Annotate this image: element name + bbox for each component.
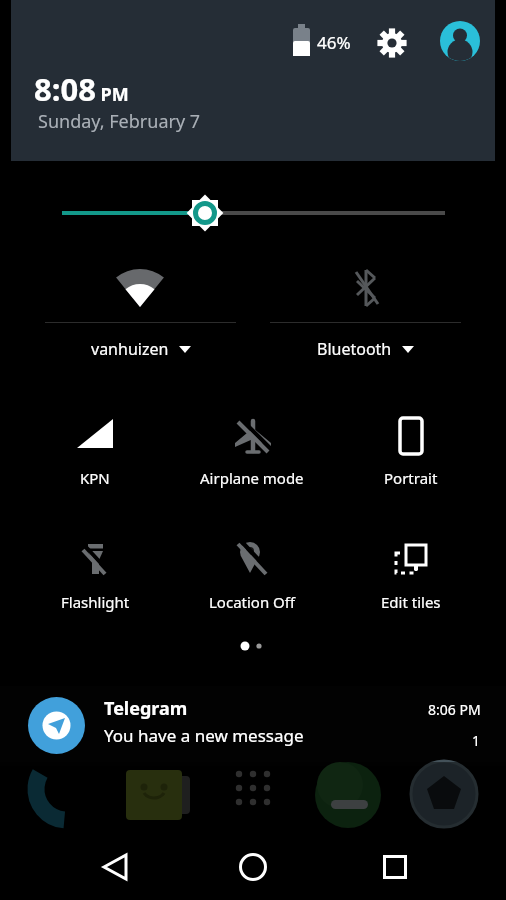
button[interactable]: Edit tiles bbox=[336, 524, 486, 624]
button[interactable]: Location Off bbox=[177, 524, 327, 624]
staticText: Sunday, February 7 bbox=[38, 109, 201, 134]
staticText: Flashlight bbox=[61, 592, 130, 612]
button[interactable]: vanhuizen bbox=[45, 248, 236, 373]
staticText: 8:08 PM bbox=[34, 68, 129, 110]
button[interactable] bbox=[40, 190, 466, 236]
staticText: Bluetooth bbox=[317, 338, 392, 360]
staticText: 1 bbox=[472, 731, 481, 750]
staticText: vanhuizen bbox=[91, 338, 169, 360]
button[interactable]: Bluetooth bbox=[270, 248, 461, 373]
button[interactable]: KPN bbox=[20, 400, 170, 500]
staticText: Airplane mode bbox=[200, 468, 304, 488]
staticText: Telegram bbox=[104, 696, 188, 721]
staticText: KPN bbox=[80, 468, 110, 488]
button[interactable] bbox=[365, 837, 425, 897]
button[interactable] bbox=[430, 11, 490, 71]
button[interactable] bbox=[85, 837, 145, 897]
staticText: 46% bbox=[317, 31, 351, 54]
button[interactable]: Portrait bbox=[336, 400, 486, 500]
button[interactable] bbox=[223, 837, 283, 897]
staticText: You have a new message bbox=[104, 724, 304, 747]
staticText: 8:06 PM bbox=[428, 700, 481, 719]
staticText: Location Off bbox=[209, 592, 296, 612]
staticText: Edit tiles bbox=[381, 592, 441, 612]
button[interactable]: Airplane mode bbox=[177, 400, 327, 500]
staticText: Portrait bbox=[384, 468, 438, 488]
button[interactable]: Flashlight bbox=[20, 524, 170, 624]
button[interactable] bbox=[374, 25, 410, 61]
button[interactable]: Telegram bbox=[0, 686, 506, 766]
